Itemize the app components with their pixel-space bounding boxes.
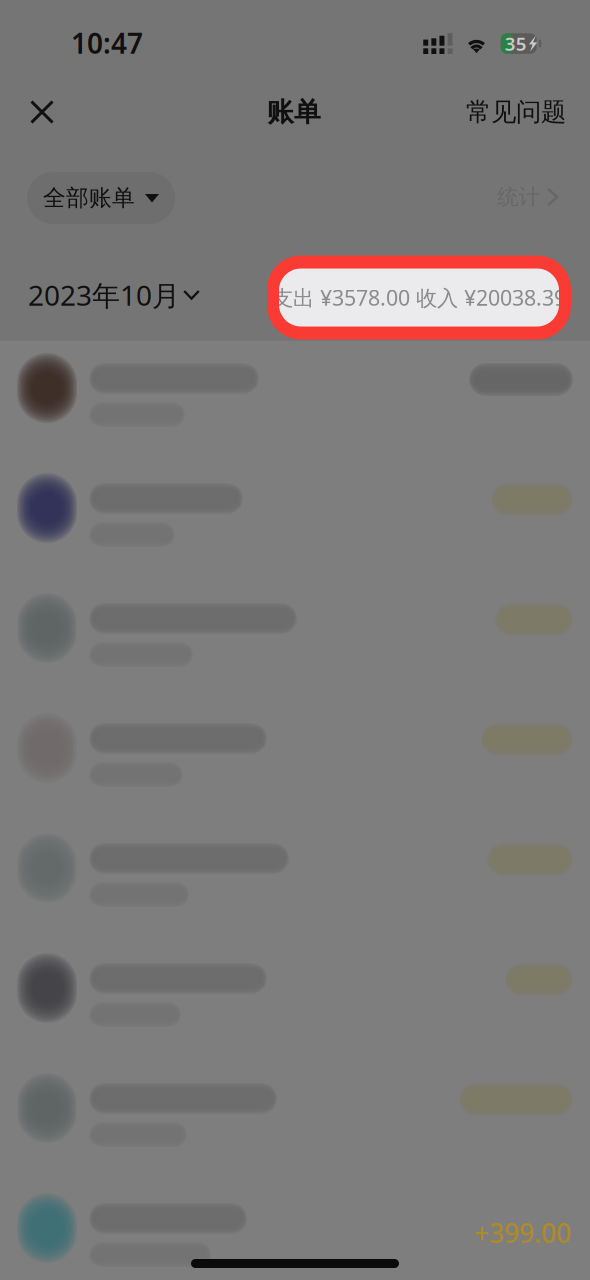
staticText: 常见问题	[466, 96, 566, 127]
staticText: 2023年10月	[28, 276, 180, 314]
staticText: 统计	[497, 184, 539, 210]
staticText: 支出 ¥3578.00 收入 ¥20038.39	[272, 283, 566, 312]
button[interactable]: 支出 ¥3578.00 收入 ¥20038.39	[267, 255, 571, 339]
button[interactable]: 关闭	[11, 84, 73, 140]
staticText: 35	[505, 31, 527, 56]
button[interactable]: 常见问题	[452, 80, 580, 143]
staticText: 账单	[267, 96, 321, 128]
staticText: 全部账单	[43, 184, 135, 212]
button[interactable]: 全部账单	[27, 172, 175, 224]
button[interactable]: 2023年10月	[28, 266, 200, 324]
staticText: +399.00	[474, 1215, 571, 1250]
button[interactable]: 统计	[487, 171, 568, 223]
staticText: 10:47	[71, 24, 143, 62]
